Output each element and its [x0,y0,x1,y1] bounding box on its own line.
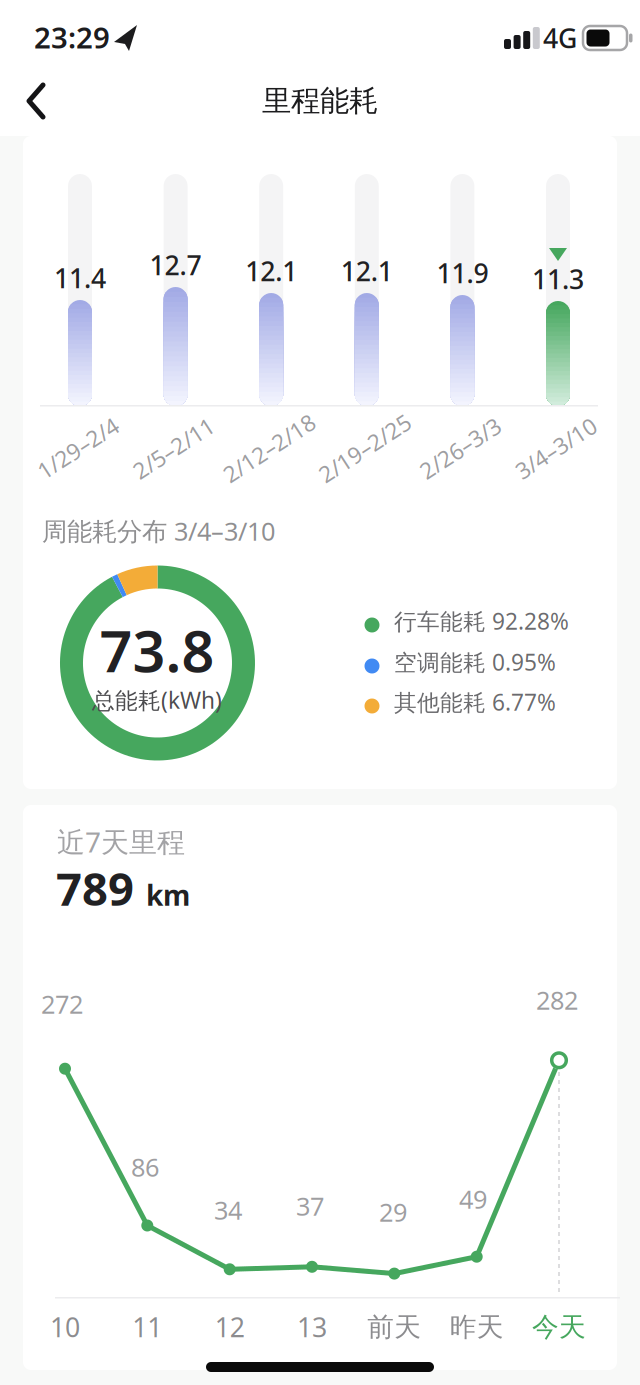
staticText: 13 [297,1309,327,1345]
staticText: 29 [379,1195,407,1229]
staticText: 2/26–3/3 [414,433,506,463]
staticText: 空调能耗 0.95% [394,647,556,677]
staticText: 23:29 [34,17,110,56]
staticText: 4G [543,20,577,56]
staticText: 12 [215,1309,245,1345]
staticText: 11 [132,1309,162,1345]
staticText: 11.9 [436,255,488,291]
staticText: 1/29–2/4 [32,433,124,463]
staticText: 今天 [532,1311,586,1343]
staticText: 其他能耗 6.77% [394,687,556,717]
staticText: 86 [131,1150,159,1184]
staticText: 前天 [367,1311,421,1343]
staticText: 3/4–3/10 [510,433,602,463]
staticText: 昨天 [450,1311,504,1343]
staticText: 2/12–2/18 [217,433,322,463]
staticText: 34 [214,1193,242,1227]
staticText: 11.3 [532,261,584,297]
button[interactable] [16,77,64,125]
staticText: 272 [41,987,83,1021]
staticText: 12.1 [341,253,393,289]
staticText: 12.1 [245,253,297,289]
staticText: 近7天里程 [57,823,185,860]
staticText: 37 [296,1189,324,1223]
staticText: 行车能耗 92.28% [394,606,569,636]
staticText: 789 [56,858,134,918]
staticText: 2/19–2/25 [312,433,417,463]
staticText: 73.8 [99,612,214,688]
staticText: 282 [536,983,578,1017]
staticText: km [146,876,190,913]
staticText: 10 [50,1309,80,1345]
staticText: 11.4 [54,260,106,296]
staticText: 2/5–2/11 [128,433,220,463]
staticText: 总能耗(kWh) [92,685,222,715]
staticText: 12.7 [150,247,202,283]
staticText: 周能耗分布 3/4–3/10 [42,514,275,548]
staticText: 49 [459,1182,487,1216]
staticText: 里程能耗 [262,83,378,119]
